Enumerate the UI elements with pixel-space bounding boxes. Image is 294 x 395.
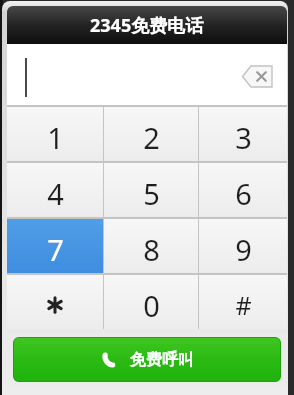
staticText: 0 xyxy=(143,286,160,325)
staticText: 6 xyxy=(235,174,252,213)
button[interactable]: 9 xyxy=(199,219,287,273)
button[interactable]: 1 xyxy=(7,107,103,161)
button[interactable] xyxy=(7,275,103,329)
button[interactable]: 7 xyxy=(7,219,103,273)
staticText: 3 xyxy=(235,118,252,157)
button[interactable] xyxy=(242,65,274,88)
button[interactable]: 3 xyxy=(199,107,287,161)
staticText: 8 xyxy=(143,230,160,269)
staticText: 2 xyxy=(143,118,160,157)
button[interactable]: 0 xyxy=(104,275,198,329)
staticText: 2345免费电话 xyxy=(90,13,204,38)
button[interactable]: 免费呼叫 xyxy=(13,337,281,382)
staticText: # xyxy=(235,288,252,322)
button[interactable]: 8 xyxy=(104,219,198,273)
staticText: 7 xyxy=(47,230,64,269)
staticText: 5 xyxy=(143,174,160,213)
staticText: 4 xyxy=(47,174,64,213)
button[interactable]: # xyxy=(199,275,287,329)
button[interactable]: 6 xyxy=(199,163,287,217)
button[interactable]: 4 xyxy=(7,163,103,217)
button[interactable]: 5 xyxy=(104,163,198,217)
staticText: 9 xyxy=(235,230,252,269)
button[interactable]: 2 xyxy=(104,107,198,161)
staticText: 1 xyxy=(47,118,64,157)
button[interactable] xyxy=(7,44,287,105)
staticText: 免费呼叫 xyxy=(130,350,194,370)
